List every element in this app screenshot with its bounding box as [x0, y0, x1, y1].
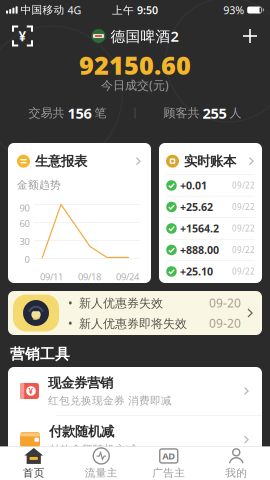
button[interactable]: 我的	[202, 447, 270, 480]
button[interactable]: 首页	[0, 447, 67, 480]
staticText: 生意报表	[35, 153, 87, 169]
staticText: 09-20	[209, 315, 241, 331]
staticText: 现金券营销	[48, 375, 113, 391]
staticText: 09/24	[116, 270, 139, 283]
staticText: 德国啤酒2	[110, 26, 178, 46]
button[interactable]: 生意报表	[8, 143, 151, 283]
button[interactable]: 实时账本	[159, 143, 262, 283]
staticText: +1564.2	[180, 221, 219, 236]
staticText: 付款随机减	[49, 423, 114, 440]
staticText: 上午 9:50	[112, 3, 158, 17]
staticText: ¥	[28, 386, 33, 396]
staticText: 09/11	[40, 270, 63, 283]
staticText: 广告主	[152, 466, 185, 479]
staticText: 红包兑换现金券 消费即减	[48, 394, 172, 407]
staticText: 实时账本	[184, 153, 236, 169]
staticText: 流量主	[85, 466, 118, 479]
staticText: 09/22	[232, 266, 255, 277]
button[interactable]: 扫码收款	[13, 26, 32, 45]
staticText: 156	[67, 103, 91, 123]
staticText: 首页	[23, 466, 45, 479]
button[interactable]: ¥	[8, 367, 262, 415]
staticText: 09/18	[78, 270, 101, 283]
staticText: 今日成交(元)	[101, 77, 169, 93]
button[interactable]: • 新人优惠券失效	[8, 291, 262, 335]
staticText: 付款金额随机立减	[49, 443, 137, 456]
staticText: ¥	[18, 27, 26, 45]
staticText: 09/22	[232, 245, 255, 255]
button[interactable]: 流量主	[67, 447, 135, 480]
staticText: AD	[162, 450, 175, 462]
staticText: 60	[19, 217, 29, 230]
staticText: 255	[202, 103, 226, 123]
staticText: 0	[24, 253, 29, 266]
staticText: 中国移动	[21, 3, 65, 16]
staticText: 笔	[94, 106, 106, 120]
staticText: 93%	[223, 3, 244, 17]
button[interactable]: 付款随机减	[8, 416, 262, 464]
staticText: +888.00	[180, 243, 219, 257]
staticText: • 新人优惠券即将失效	[68, 315, 187, 331]
staticText: 09-20	[209, 295, 241, 311]
staticText: 人	[229, 106, 241, 120]
button[interactable]: 添加	[243, 29, 257, 43]
button[interactable]: AD	[135, 447, 202, 480]
staticText: 金额趋势	[17, 178, 61, 191]
staticText: +0.01	[180, 178, 207, 193]
staticText: +25.10	[180, 264, 213, 279]
button[interactable]: 德国啤酒2	[91, 26, 178, 46]
staticText: +25.62	[180, 200, 213, 214]
staticText: 我的	[225, 466, 247, 479]
staticText: 营销工具	[10, 345, 70, 363]
staticText: 顾客共	[163, 106, 199, 120]
staticText: 09/22	[232, 180, 255, 191]
staticText: 30	[19, 235, 29, 248]
staticText: • 新人优惠券失效	[68, 295, 163, 311]
staticText: 92150.60	[79, 48, 191, 82]
staticText: 09/22	[232, 223, 255, 234]
staticText: 交易共	[28, 106, 64, 120]
staticText: 90	[19, 202, 29, 214]
staticText: 09/22	[232, 202, 255, 212]
staticText: 4G	[68, 3, 82, 17]
